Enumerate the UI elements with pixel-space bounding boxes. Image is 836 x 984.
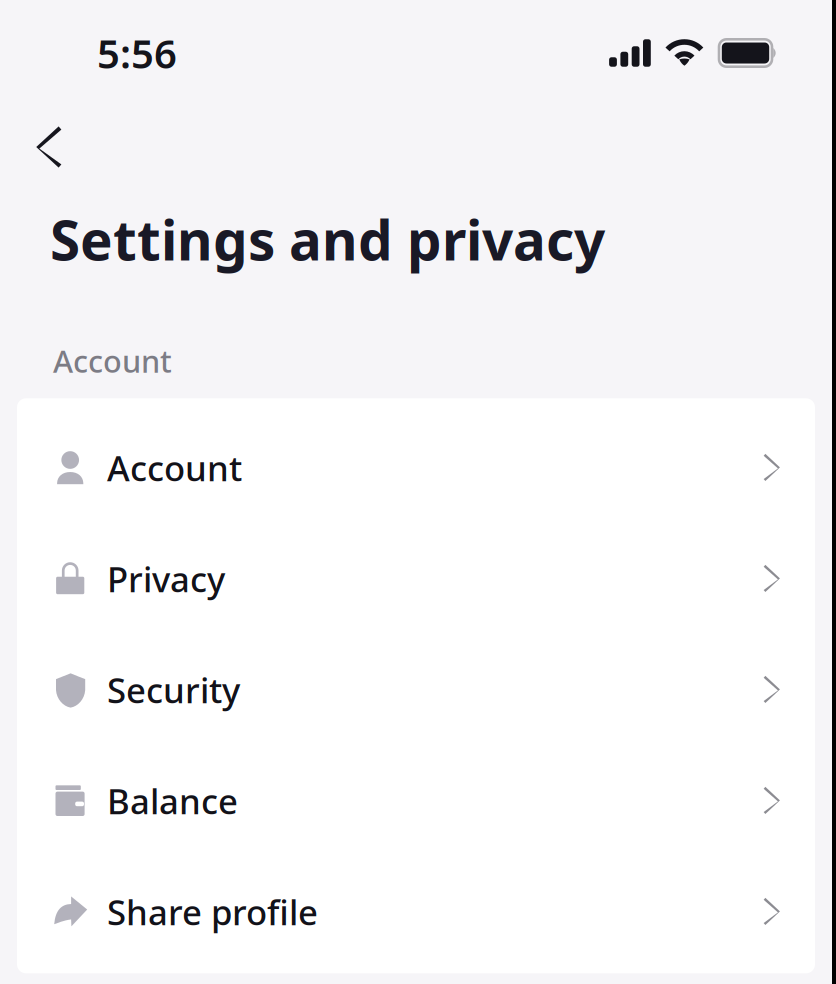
staticText: Account <box>53 341 172 381</box>
staticText: Balance <box>107 778 238 824</box>
staticText: Privacy <box>107 556 225 602</box>
staticText: Account <box>107 445 242 491</box>
staticText: Share profile <box>107 889 318 935</box>
button[interactable]: Privacy <box>17 519 815 630</box>
staticText: Settings and privacy <box>50 203 605 276</box>
button[interactable]: Security <box>17 630 815 741</box>
staticText: Security <box>107 667 240 713</box>
staticText: 5:56 <box>97 26 177 79</box>
button[interactable]: Account <box>17 408 815 519</box>
button[interactable]: Balance <box>17 741 815 852</box>
button[interactable]: Back <box>0 118 85 176</box>
button[interactable]: Share profile <box>17 852 815 963</box>
